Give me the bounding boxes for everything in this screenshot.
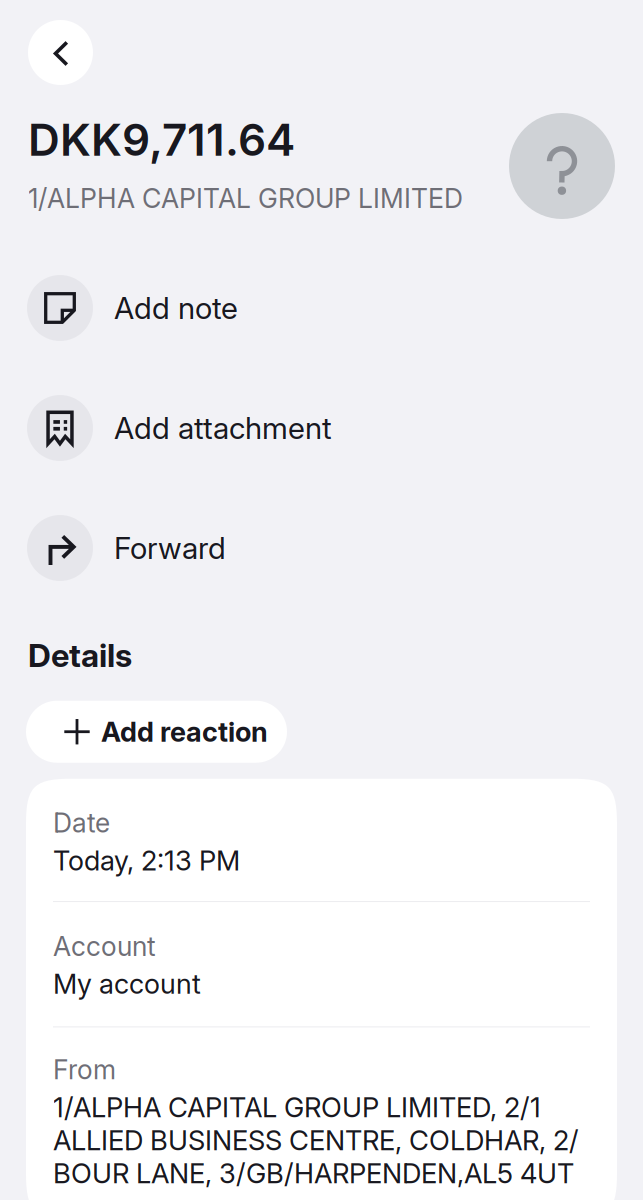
staticText: Add note — [114, 290, 238, 326]
staticText: 1/ALPHA CAPITAL GROUP LIMITED — [28, 182, 463, 214]
button[interactable]: Add reaction — [26, 701, 287, 763]
staticText: From — [53, 1053, 116, 1086]
button[interactable]: Back — [28, 20, 93, 85]
button[interactable]: Help — [509, 113, 615, 219]
staticText: Details — [28, 636, 132, 675]
button[interactable]: Forward — [0, 488, 643, 608]
staticText: Forward — [114, 530, 226, 566]
staticText: Date — [53, 807, 110, 839]
button[interactable]: Add note — [0, 248, 643, 368]
staticText: My account — [53, 967, 201, 1000]
staticText: Account — [53, 930, 156, 962]
staticText: 1/ALPHA CAPITAL GROUP LIMITED, 2/1 ALLIE… — [53, 1091, 579, 1190]
staticText: Add attachment — [114, 410, 332, 446]
staticText: Add reaction — [101, 715, 268, 748]
button[interactable]: Add attachment — [0, 368, 643, 488]
staticText: DKK9,711.64 — [28, 113, 295, 166]
staticText: Today, 2:13 PM — [53, 844, 240, 877]
